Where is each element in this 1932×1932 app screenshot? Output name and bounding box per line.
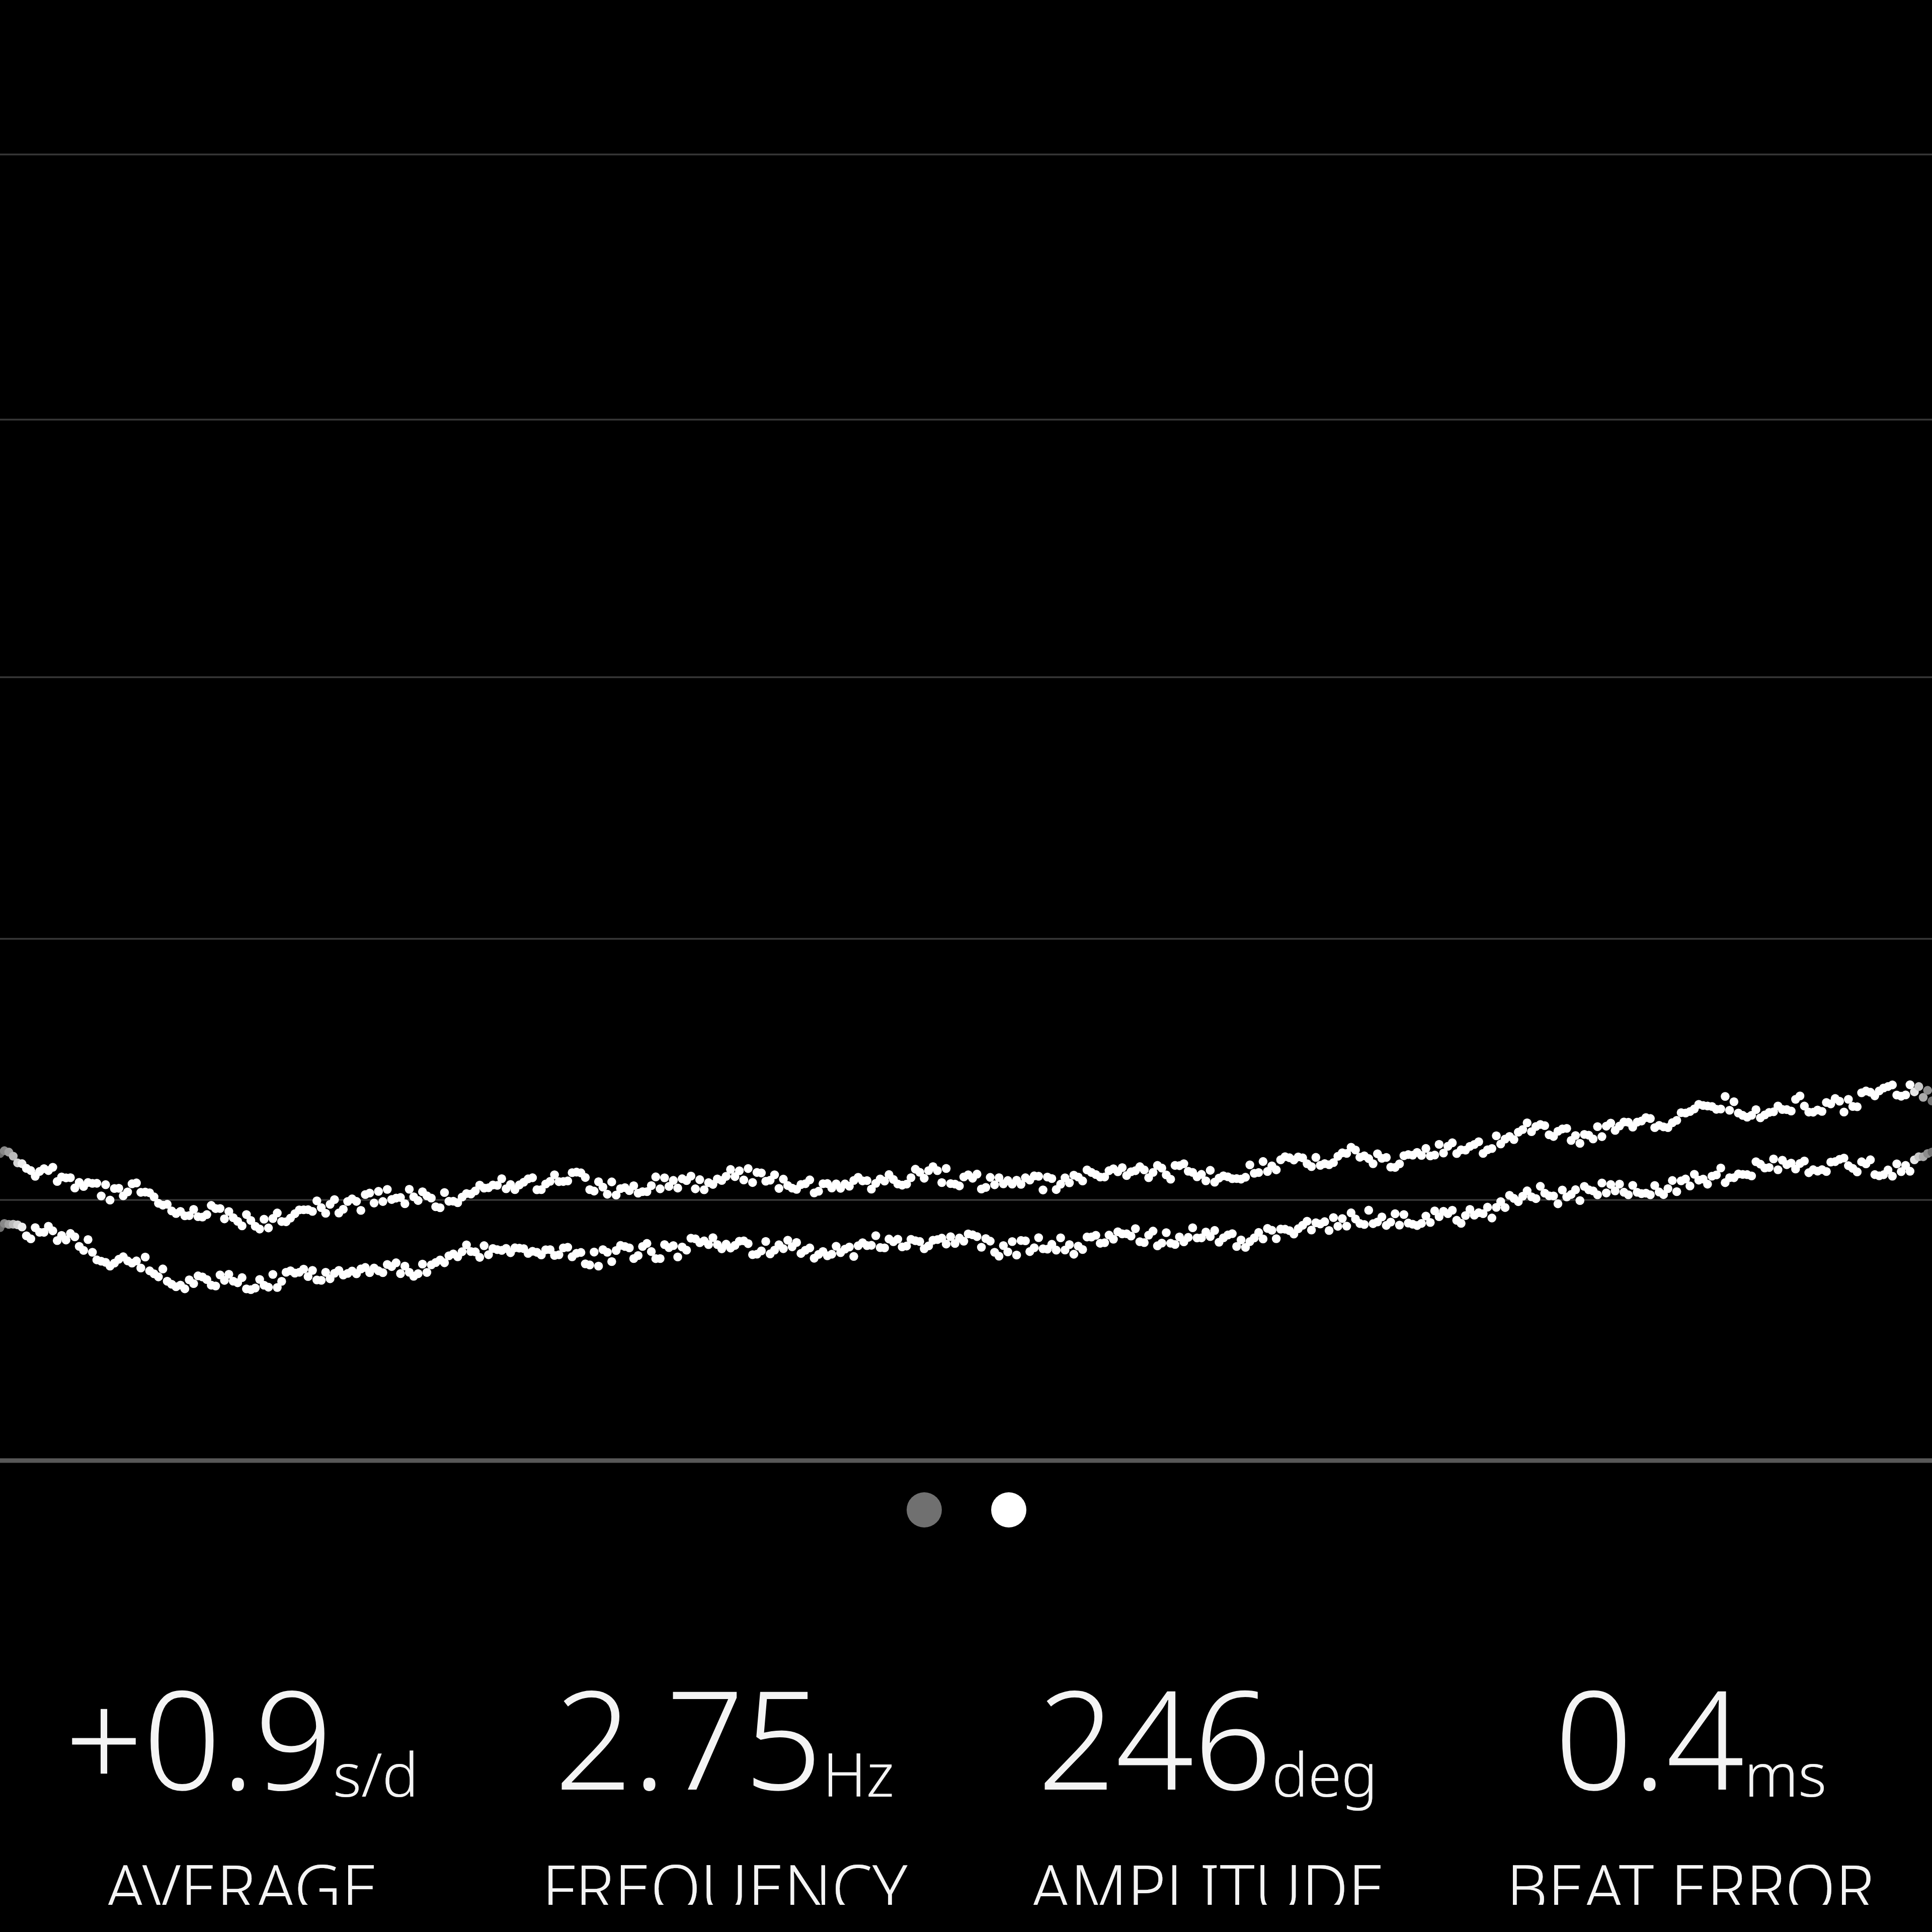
staticText: 246 bbox=[1037, 1643, 1272, 1829]
button[interactable]: 0.4 bbox=[1449, 1643, 1932, 1905]
staticText: 2.75 bbox=[554, 1643, 823, 1829]
button[interactable]: +0.9 bbox=[0, 1643, 483, 1905]
button[interactable]: 2.75 bbox=[483, 1643, 966, 1905]
staticText: AVERAGE bbox=[105, 1842, 378, 1905]
staticText: ms bbox=[1744, 1732, 1827, 1814]
staticText: 0.4 bbox=[1555, 1643, 1744, 1829]
button[interactable]: Page 1 bbox=[907, 1492, 942, 1527]
staticText: AMPLITUDE bbox=[1030, 1842, 1385, 1905]
staticText: BEAT ERROR bbox=[1506, 1842, 1875, 1905]
staticText: deg bbox=[1272, 1732, 1378, 1814]
staticText: Hz bbox=[823, 1732, 895, 1814]
staticText: +0.9 bbox=[65, 1643, 333, 1829]
staticText: s/d bbox=[333, 1732, 419, 1814]
button[interactable]: Page 2, selected bbox=[991, 1492, 1026, 1527]
button[interactable]: 246 bbox=[966, 1643, 1449, 1905]
staticText: FREQUENCY bbox=[542, 1842, 908, 1905]
